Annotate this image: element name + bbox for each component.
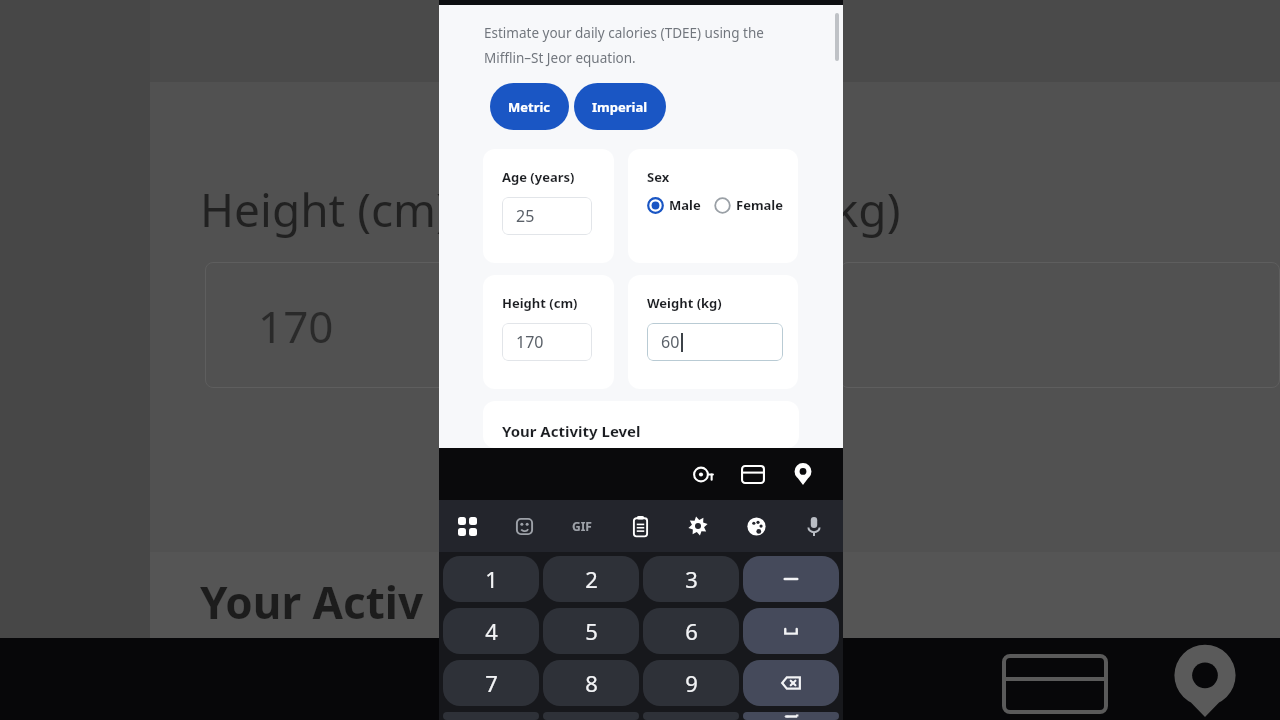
staticText: 7: [485, 668, 498, 698]
staticText: 4: [485, 616, 498, 646]
staticText: 8: [585, 668, 598, 698]
button[interactable]: Stickers: [496, 500, 553, 552]
button[interactable]: 7: [443, 660, 539, 706]
button[interactable]: 6: [643, 608, 739, 654]
staticText: Estimate your daily calories (TDEE) usin…: [484, 24, 764, 67]
button[interactable]: Address autofill: [781, 452, 825, 496]
button[interactable]: Backspace: [743, 660, 839, 706]
staticText: 170: [516, 331, 544, 353]
button[interactable]: GIF: [553, 500, 611, 552]
button[interactable]: 3: [643, 556, 739, 602]
staticText: Sex: [647, 168, 670, 186]
staticText: Female: [736, 196, 783, 214]
button[interactable]: 170: [502, 323, 592, 361]
staticText: 5: [585, 616, 598, 646]
button[interactable]: Apps: [439, 500, 496, 552]
staticText: Height (cm): [502, 294, 578, 312]
button[interactable]: Settings: [669, 500, 727, 552]
button[interactable]: 9: [643, 660, 739, 706]
button[interactable]: Themes: [727, 500, 785, 552]
staticText: 1: [485, 564, 498, 594]
button[interactable]: Metric: [490, 83, 569, 130]
staticText: Metric: [508, 98, 551, 116]
staticText: 60: [661, 331, 680, 353]
staticText: Your Activ: [200, 572, 424, 632]
button[interactable]: Space: [743, 608, 839, 654]
button[interactable]: Clipboard: [611, 500, 669, 552]
staticText: Height (cm): [200, 178, 450, 241]
button[interactable]: 8: [543, 660, 639, 706]
button[interactable]: Minus: [743, 556, 839, 602]
button[interactable]: Enter: [743, 712, 839, 720]
staticText: 2: [585, 564, 598, 594]
staticText: 3: [685, 564, 698, 594]
button[interactable]: 1: [443, 556, 539, 602]
staticText: Age (years): [502, 168, 575, 186]
staticText: GIF: [572, 518, 592, 534]
button[interactable]: 2: [543, 556, 639, 602]
staticText: Male: [669, 196, 701, 214]
staticText: 170: [258, 296, 334, 356]
staticText: 25: [516, 205, 535, 227]
button[interactable]: 5: [543, 608, 639, 654]
button[interactable]: 4: [443, 608, 539, 654]
button[interactable]: Female: [714, 196, 783, 214]
staticText: Imperial: [592, 98, 648, 116]
button[interactable]: Card autofill: [731, 452, 775, 496]
staticText: Weight (kg): [647, 294, 722, 312]
staticText: 9: [685, 668, 698, 698]
staticText: (kg): [820, 178, 901, 241]
staticText: Your Activity Level: [502, 421, 641, 441]
button[interactable]: Voice input: [785, 500, 843, 552]
button[interactable]: Male: [647, 196, 701, 214]
button[interactable]: 60: [647, 323, 783, 361]
staticText: 6: [685, 616, 698, 646]
button[interactable]: Imperial: [574, 83, 666, 130]
button[interactable]: Your Activity Level: [483, 401, 799, 448]
button[interactable]: 25: [502, 197, 592, 235]
button[interactable]: Password autofill: [681, 452, 725, 496]
